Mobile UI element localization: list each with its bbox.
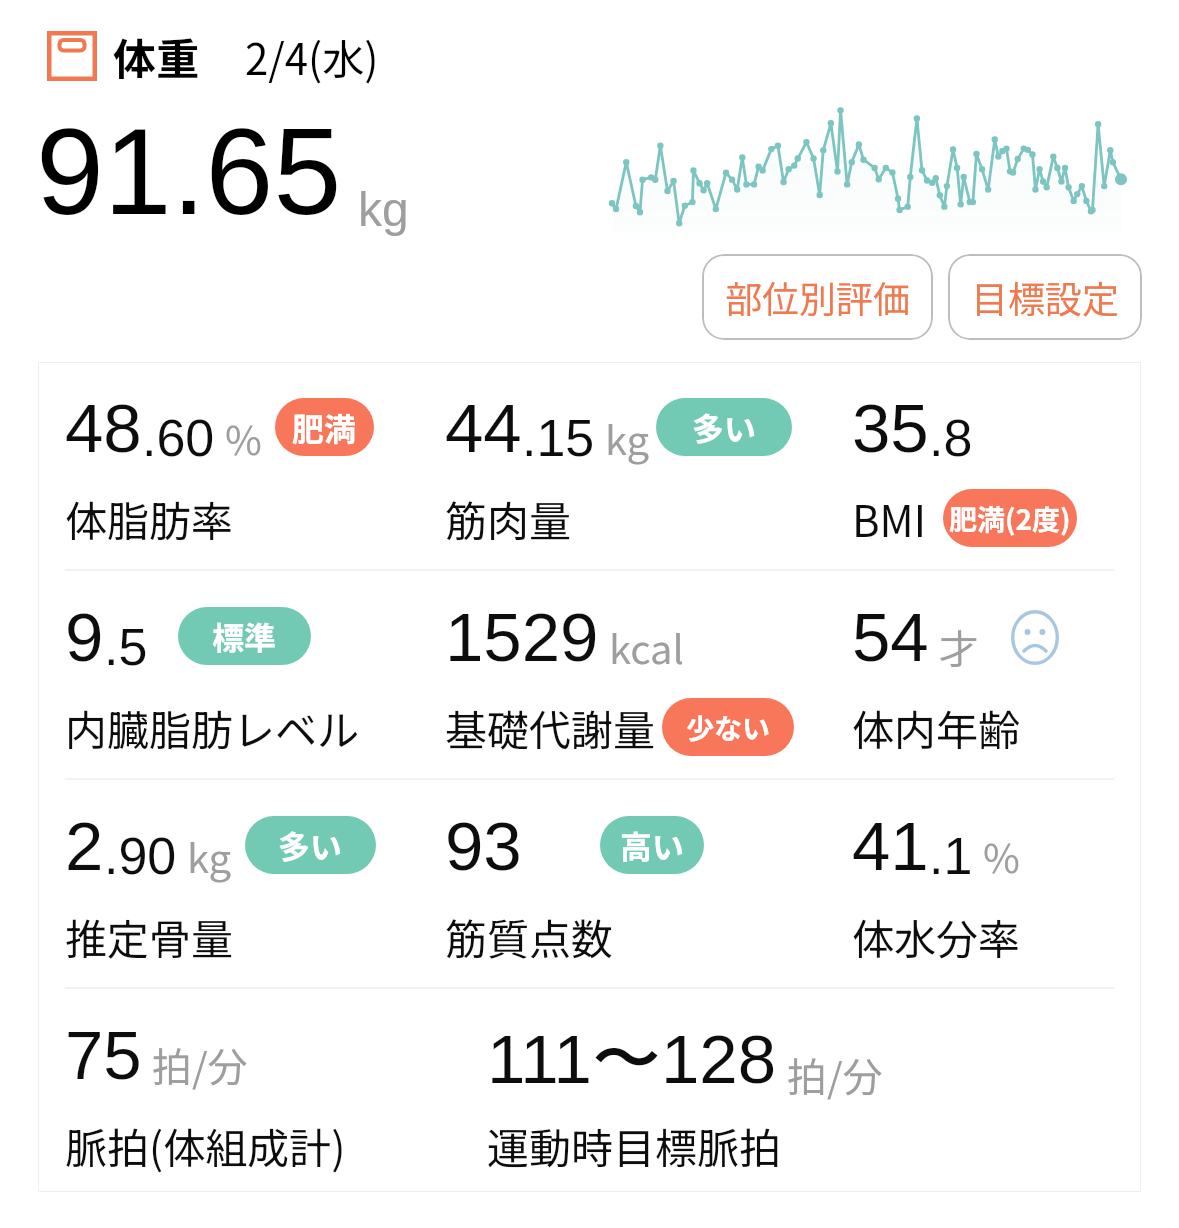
staticText: 多い — [278, 822, 343, 868]
other: 体重推移グラフ — [612, 109, 1121, 233]
staticText: 111〜128 — [487, 1017, 777, 1104]
staticText: .5 — [104, 618, 148, 676]
staticText: kg — [358, 183, 409, 237]
staticText: 筋質点数 — [445, 906, 614, 967]
button[interactable]: 41 — [852, 780, 1112, 987]
button[interactable]: 75 — [65, 989, 487, 1192]
staticText: 基礎代謝量 — [445, 697, 656, 758]
staticText: kg — [187, 827, 232, 885]
staticText: 91.65 — [36, 104, 342, 240]
staticText: 運動時目標脈拍 — [487, 1115, 782, 1176]
staticText: 高い — [620, 822, 685, 868]
staticText: 93 — [445, 808, 522, 885]
button[interactable]: 44 — [445, 362, 852, 569]
staticText: 48 — [65, 390, 142, 467]
staticText: .8 — [929, 409, 973, 467]
button[interactable]: 多い — [245, 816, 376, 874]
button[interactable]: 1529 — [445, 571, 852, 778]
staticText: 2 — [65, 808, 104, 885]
button[interactable]: 35 — [852, 362, 1112, 569]
staticText: 2/4(水) — [245, 26, 379, 87]
staticText: 体重 — [113, 25, 199, 87]
staticText: 肥満 — [292, 404, 357, 450]
staticText: 多い — [692, 404, 757, 450]
button[interactable]: 肥満 — [275, 398, 374, 456]
button[interactable]: 目標設定 — [948, 254, 1142, 340]
other: 体重計 — [47, 31, 97, 81]
staticText: % — [225, 409, 262, 467]
staticText: .15 — [522, 409, 595, 467]
button[interactable]: 54 — [852, 571, 1112, 778]
staticText: 41 — [852, 808, 929, 885]
staticText: .1 — [929, 827, 973, 885]
staticText: 才 — [939, 618, 979, 676]
button[interactable]: 高い — [600, 816, 704, 874]
staticText: 44 — [445, 390, 522, 467]
staticText: BMI — [852, 488, 927, 549]
staticText: 体水分率 — [852, 906, 1021, 967]
button[interactable]: 2 — [65, 780, 445, 987]
staticText: kcal — [609, 618, 684, 676]
button[interactable]: 多い — [656, 398, 792, 456]
button[interactable]: 48 — [65, 362, 445, 569]
staticText: kg — [605, 409, 650, 467]
staticText: 拍/分 — [152, 1036, 248, 1094]
staticText: 肥満(2度) — [949, 498, 1071, 539]
staticText: 標準 — [212, 613, 277, 659]
staticText: 体内年齢 — [852, 697, 1021, 758]
button[interactable]: 部位別評価 — [702, 254, 933, 340]
staticText: 拍/分 — [787, 1046, 883, 1104]
staticText: 脈拍(体組成計) — [65, 1115, 346, 1176]
button[interactable]: 93 — [445, 780, 852, 987]
button[interactable]: 肥満(2度) — [943, 489, 1077, 547]
button[interactable]: 111〜128 — [487, 989, 1112, 1192]
staticText: 筋肉量 — [445, 488, 572, 549]
button[interactable]: 少ない — [662, 698, 794, 756]
staticText: 54 — [852, 599, 929, 676]
staticText: % — [983, 827, 1020, 885]
staticText: .90 — [104, 827, 177, 885]
staticText: 体脂肪率 — [65, 488, 234, 549]
staticText: 推定骨量 — [65, 906, 234, 967]
staticText: 部位別評価 — [725, 270, 910, 324]
staticText: 1529 — [445, 599, 599, 676]
staticText: 75 — [65, 1017, 142, 1094]
button[interactable]: 標準 — [178, 607, 311, 665]
staticText: 9 — [65, 599, 104, 676]
staticText: 内臓脂肪レベル — [65, 697, 360, 758]
staticText: 少ない — [686, 707, 771, 748]
staticText: 目標設定 — [971, 270, 1119, 324]
staticText: 35 — [852, 390, 929, 467]
button[interactable]: 9 — [65, 571, 445, 778]
staticText: .60 — [142, 409, 215, 467]
